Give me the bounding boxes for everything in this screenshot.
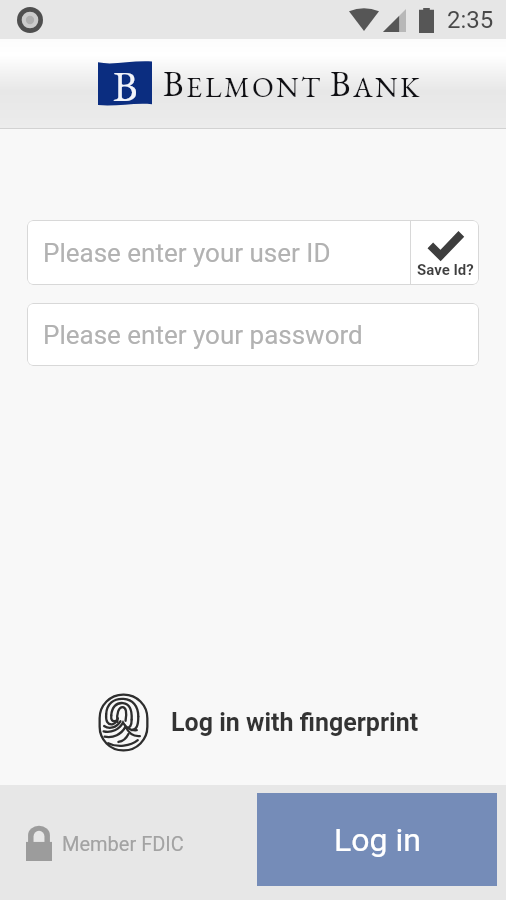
staticText: B [163,61,184,107]
staticText: 2:35 [447,6,494,34]
staticText: N [276,68,299,105]
staticText: B [113,59,138,106]
staticText: O [252,68,274,105]
staticText: Log in with fingerprint [171,708,419,737]
staticText: T [301,68,321,105]
other: Notification [17,7,43,33]
button[interactable]: Save Id [411,220,479,285]
staticText: A [353,68,373,105]
button[interactable]: Please enter your password [27,303,479,366]
button[interactable]: Member FDIC [26,825,184,861]
staticText: E [186,68,203,105]
staticText: Log in [334,821,421,859]
staticText: N [375,68,398,105]
staticText: Please enter your user ID [43,238,331,268]
button[interactable]: Please enter your user ID [27,220,410,285]
staticText: M [224,68,250,105]
staticText: Please enter your password [43,320,363,350]
staticText: Member FDIC [62,832,184,855]
button[interactable]: Log in [257,793,497,886]
staticText: K [400,68,420,105]
staticText: Save Id? [417,261,474,279]
staticText: L [205,68,222,105]
button[interactable]: Log in with fingerprint [90,693,431,752]
staticText: B [330,61,351,107]
